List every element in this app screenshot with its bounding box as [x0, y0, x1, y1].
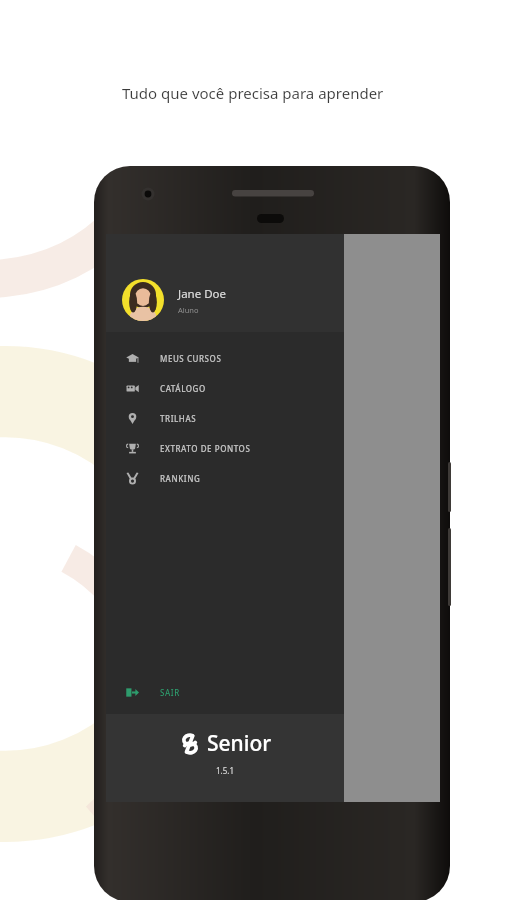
staticText: Senior	[207, 729, 272, 758]
staticText: RANKING	[160, 473, 201, 484]
button[interactable]: EXTRATO DE PONTOS	[106, 433, 344, 463]
button[interactable]: SAIR	[106, 677, 344, 707]
staticText: TRILHAS	[160, 413, 197, 424]
staticText: EXTRATO DE PONTOS	[160, 443, 251, 454]
button[interactable]: MEUS CURSOS	[106, 343, 344, 373]
button[interactable]: CATÁLOGO	[106, 373, 344, 403]
staticText: Tudo que você precisa para aprender	[122, 83, 384, 103]
staticText: Aluno	[178, 305, 199, 315]
button[interactable]: RANKING	[106, 463, 344, 493]
staticText: MEUS CURSOS	[160, 353, 222, 364]
staticText: CATÁLOGO	[160, 383, 206, 394]
button[interactable]: TRILHAS	[106, 403, 344, 433]
button[interactable]: Jane Doe	[106, 234, 344, 332]
staticText: SAIR	[160, 687, 180, 698]
staticText: 1.5.1	[216, 765, 235, 776]
staticText: Jane Doe	[178, 286, 227, 302]
